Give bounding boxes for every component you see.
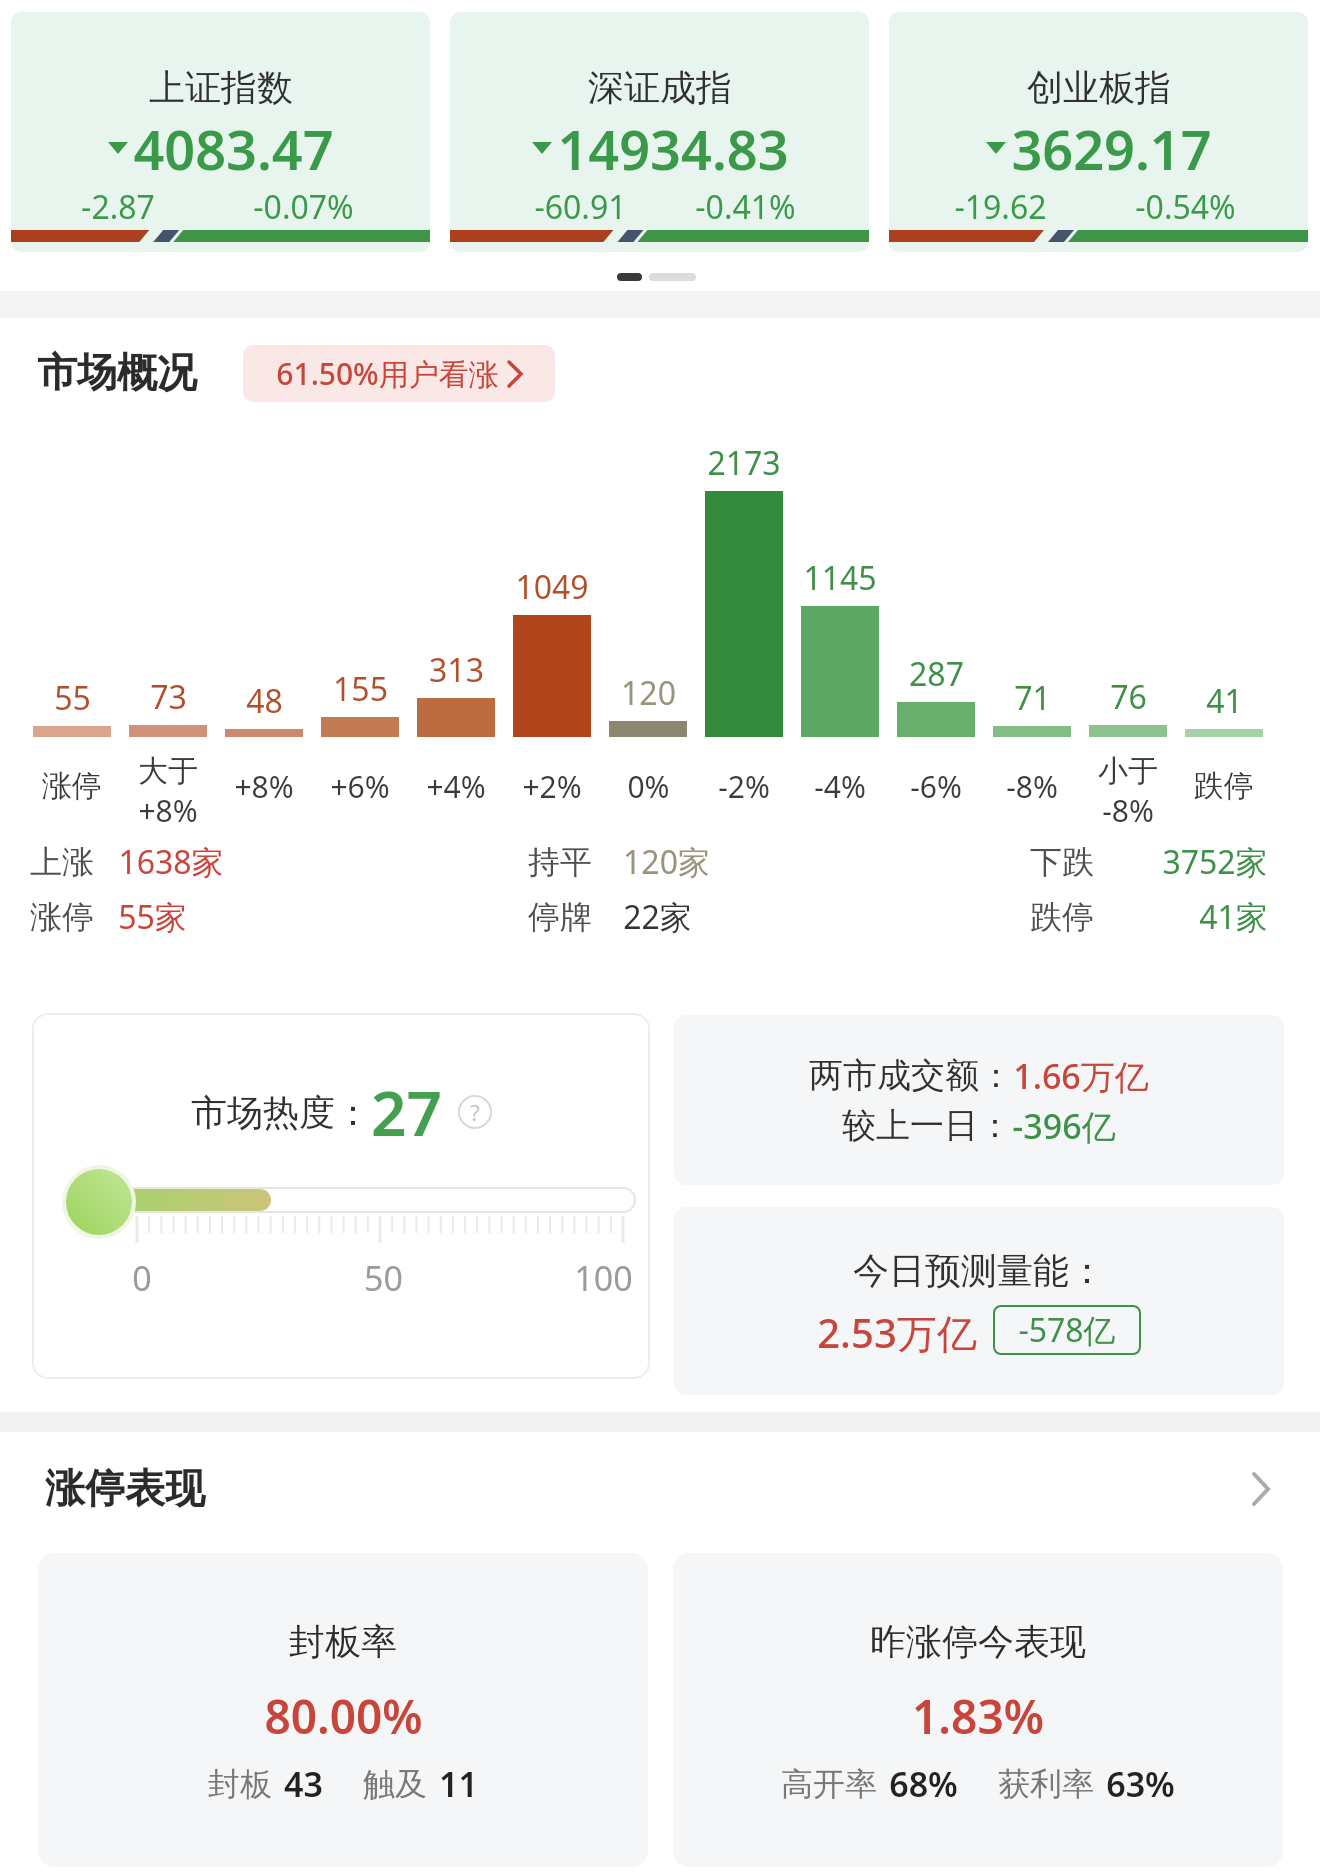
staticText: 1145 xyxy=(803,556,877,598)
staticText: 22家 xyxy=(623,895,692,939)
staticText: 100 xyxy=(574,1255,633,1299)
staticText: ? xyxy=(470,1097,480,1127)
button[interactable]: 两市成交额： xyxy=(674,1015,1284,1185)
staticText: 创业板指 xyxy=(1027,65,1171,110)
staticText: +6% xyxy=(330,766,390,807)
staticText: 1.66万亿 xyxy=(1013,1053,1149,1097)
staticText: 小于 xyxy=(1098,752,1158,790)
staticText: 1.83% xyxy=(912,1685,1044,1741)
staticText: 73 xyxy=(150,675,187,717)
staticText: 昨涨停今表现 xyxy=(870,1619,1086,1664)
staticText: 涨停 xyxy=(30,897,94,937)
staticText: 14934.83 xyxy=(557,112,789,184)
staticText: 涨停 xyxy=(42,767,102,805)
staticText: 停牌 xyxy=(528,897,592,937)
staticText: 大于 xyxy=(138,752,198,790)
button[interactable]: 市场热度： xyxy=(32,1013,650,1379)
staticText: 跌停 xyxy=(1030,897,1094,937)
button[interactable]: 上证指数 xyxy=(11,12,430,252)
staticText: 0 xyxy=(132,1255,152,1299)
staticText: 2173 xyxy=(707,441,781,483)
staticText: 80.00% xyxy=(264,1685,423,1741)
staticText: 跌停 xyxy=(1194,767,1254,805)
staticText: -2% xyxy=(718,766,770,807)
staticText: -8% xyxy=(1006,766,1058,807)
staticText: 深证成指 xyxy=(588,65,732,110)
staticText: 市场概况 xyxy=(37,347,197,397)
staticText: 41家 xyxy=(1199,895,1268,939)
staticText: 55家 xyxy=(118,895,187,939)
staticText: 持平 xyxy=(528,842,592,882)
staticText: 120家 xyxy=(623,840,710,884)
staticText: -396亿 xyxy=(1012,1103,1116,1147)
staticText: 313 xyxy=(429,648,484,690)
staticText: 61.50%用户看涨 xyxy=(276,353,499,394)
staticText: 3629.17 xyxy=(1011,112,1212,184)
staticText: 3752家 xyxy=(1162,840,1268,884)
staticText: 较上一日： xyxy=(842,1104,1012,1147)
staticText: 上证指数 xyxy=(149,65,293,110)
staticText: 涨停表现 xyxy=(45,1463,205,1513)
staticText: -578亿 xyxy=(1018,1308,1116,1352)
staticText: -0.54% xyxy=(1135,185,1236,229)
staticText: 11 xyxy=(439,1761,478,1807)
staticText: 155 xyxy=(333,667,388,709)
staticText: 封板率 xyxy=(289,1619,397,1664)
button[interactable]: 今日预测量能： xyxy=(674,1207,1284,1395)
staticText: 41 xyxy=(1206,679,1243,721)
staticText: -60.91 xyxy=(534,185,627,229)
staticText: -2.87 xyxy=(81,185,155,229)
staticText: 高开率 xyxy=(781,1764,877,1804)
staticText: 上涨 xyxy=(30,842,94,882)
button[interactable]: 深证成指 xyxy=(450,12,869,252)
button[interactable]: 61.50%用户看涨 xyxy=(243,345,555,402)
staticText: 27 xyxy=(371,1070,442,1154)
button[interactable]: 创业板指 xyxy=(889,12,1308,252)
staticText: 76 xyxy=(1110,675,1147,717)
button[interactable]: 涨停表现 xyxy=(0,1458,1320,1518)
staticText: -0.41% xyxy=(695,185,796,229)
staticText: +8% xyxy=(138,790,198,830)
staticText: 今日预测量能： xyxy=(853,1248,1105,1292)
staticText: 4083.47 xyxy=(133,112,334,184)
staticText: +4% xyxy=(426,766,486,807)
staticText: 两市成交额： xyxy=(809,1054,1013,1097)
staticText: 0% xyxy=(627,766,670,807)
staticText: 封板 xyxy=(208,1764,272,1804)
staticText: 触及 xyxy=(363,1764,427,1804)
staticText: -6% xyxy=(910,766,962,807)
staticText: 48 xyxy=(246,679,283,721)
staticText: 下跌 xyxy=(1030,842,1094,882)
staticText: +8% xyxy=(234,766,294,807)
staticText: -19.62 xyxy=(954,185,1047,229)
staticText: 287 xyxy=(909,652,964,694)
button[interactable]: 昨涨停今表现 xyxy=(673,1553,1283,1867)
staticText: 获利率 xyxy=(998,1764,1094,1804)
staticText: 市场热度： xyxy=(191,1090,371,1135)
staticText: 43 xyxy=(284,1761,323,1807)
staticText: -4% xyxy=(814,766,866,807)
staticText: 50 xyxy=(364,1255,403,1299)
staticText: 63% xyxy=(1106,1761,1175,1807)
staticText: 2.53万亿 xyxy=(817,1305,977,1355)
staticText: -0.07% xyxy=(253,185,354,229)
staticText: 1049 xyxy=(515,565,589,607)
staticText: -8% xyxy=(1102,790,1154,830)
staticText: 71 xyxy=(1014,676,1051,718)
staticText: 68% xyxy=(889,1761,958,1807)
button[interactable]: 封板率 xyxy=(38,1553,648,1867)
staticText: 55 xyxy=(54,676,91,718)
staticText: 120 xyxy=(621,671,676,713)
staticText: +2% xyxy=(522,766,582,807)
staticText: 1638家 xyxy=(118,840,224,884)
